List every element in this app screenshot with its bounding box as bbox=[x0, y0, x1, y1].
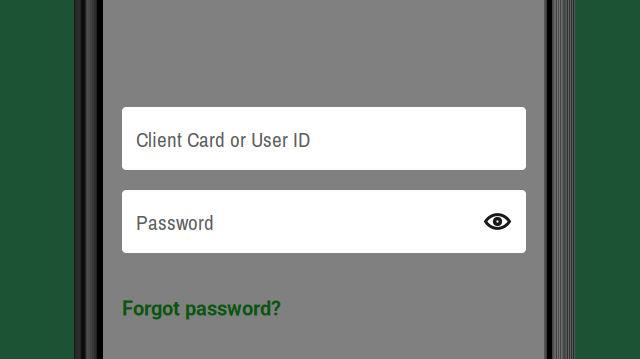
button[interactable] bbox=[470, 190, 526, 253]
staticText: Forgot password? bbox=[122, 297, 281, 320]
staticText: Client Card or User ID bbox=[136, 125, 310, 154]
button[interactable]: Client Card or User ID bbox=[122, 107, 526, 170]
staticText: Password bbox=[136, 208, 214, 237]
button[interactable]: Password bbox=[122, 190, 470, 253]
button[interactable]: Forgot password? bbox=[122, 297, 281, 320]
